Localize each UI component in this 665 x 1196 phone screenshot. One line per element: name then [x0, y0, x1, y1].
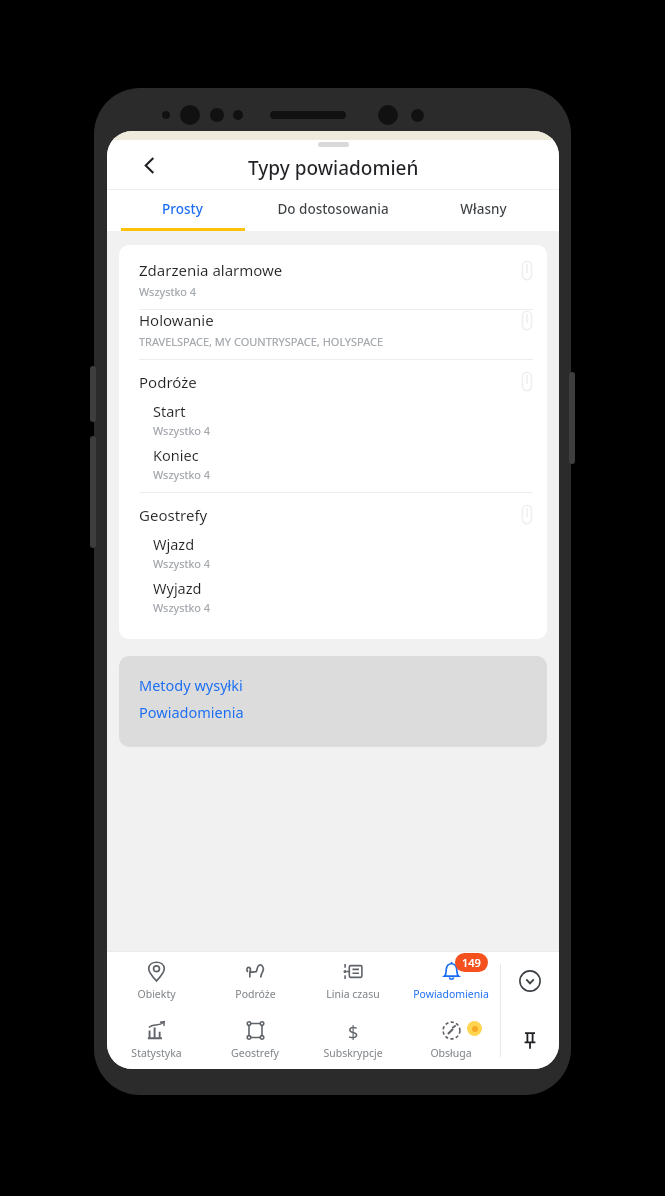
- staticText: Wszystko 4: [153, 600, 211, 615]
- button[interactable]: 149: [402, 952, 500, 1010]
- button[interactable]: Prosty: [107, 190, 257, 228]
- button[interactable]: Własny: [408, 190, 559, 228]
- staticText: Wyjazd: [153, 578, 202, 598]
- button[interactable]: Do dostosowania: [257, 190, 408, 228]
- staticText: Wszystko 4: [153, 556, 211, 571]
- button[interactable]: Zdarzenia alarmowe: [119, 260, 547, 309]
- staticText: Podróże: [139, 372, 521, 392]
- button[interactable]: Powiadomienia: [139, 702, 244, 722]
- button[interactable]: Podróże: [119, 360, 547, 394]
- button[interactable]: Pin: [501, 1010, 559, 1069]
- staticText: Wszystko 4: [153, 467, 211, 482]
- staticText: Linia czasu: [326, 987, 380, 1001]
- staticText: $: [348, 1020, 359, 1041]
- staticText: 149: [462, 955, 481, 970]
- staticText: Powiadomienia: [139, 702, 244, 722]
- staticText: Własny: [460, 200, 507, 218]
- button[interactable]: Wjazd: [119, 527, 547, 571]
- button[interactable]: Obiekty: [107, 952, 206, 1010]
- staticText: Powiadomienia: [413, 987, 489, 1001]
- staticText: Start: [153, 401, 186, 421]
- button[interactable]: Geostrefy: [206, 1010, 304, 1069]
- staticText: Statystyka: [131, 1046, 182, 1060]
- staticText: Wszystko 4: [139, 284, 197, 299]
- staticText: Wszystko 4: [153, 423, 211, 438]
- staticText: Obsługa: [430, 1046, 472, 1060]
- staticText: Metody wysyłki: [139, 675, 243, 695]
- staticText: Do dostosowania: [277, 200, 389, 218]
- staticText: Typy powiadomień: [248, 155, 419, 181]
- button[interactable]: Obsługa: [402, 1010, 500, 1069]
- staticText: Obiekty: [137, 987, 176, 1001]
- staticText: Zdarzenia alarmowe: [139, 260, 283, 280]
- button[interactable]: Expand: [501, 952, 559, 1010]
- staticText: Geostrefy: [139, 505, 521, 525]
- button[interactable]: Linia czasu: [304, 952, 402, 1010]
- staticText: Holowanie: [139, 310, 214, 330]
- button[interactable]: Statystyka: [107, 1010, 206, 1069]
- button[interactable]: Wyjazd: [119, 571, 547, 615]
- button[interactable]: Geostrefy: [119, 493, 547, 527]
- button[interactable]: $: [304, 1010, 402, 1069]
- button[interactable]: Koniec: [119, 438, 547, 482]
- staticText: Geostrefy: [231, 1046, 279, 1060]
- staticText: Koniec: [153, 445, 199, 465]
- button[interactable]: Metody wysyłki: [139, 675, 243, 695]
- button[interactable]: Back: [131, 147, 167, 183]
- staticText: Prosty: [162, 200, 203, 218]
- staticText: Wjazd: [153, 534, 195, 554]
- staticText: TRAVELSPACE, MY COUNTRYSPACE, HOLYSPACE: [139, 334, 384, 349]
- button[interactable]: Podróże: [206, 952, 304, 1010]
- staticText: Podróże: [235, 987, 276, 1001]
- button[interactable]: Start: [119, 394, 547, 438]
- button[interactable]: Holowanie: [119, 310, 547, 359]
- staticText: Subskrypcje: [323, 1046, 383, 1060]
